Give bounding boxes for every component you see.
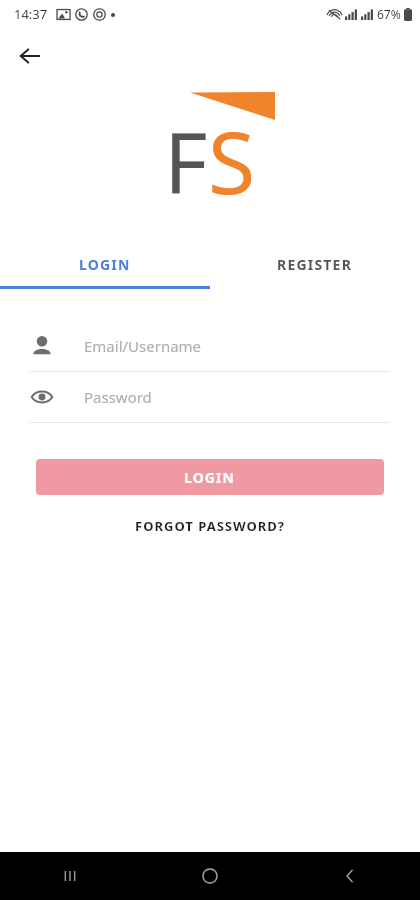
staticText: Email/Username <box>84 336 202 356</box>
button[interactable]: LOGIN <box>36 459 384 495</box>
button[interactable]: Password <box>0 372 420 422</box>
button[interactable]: Back <box>8 34 52 78</box>
staticText: LOGIN <box>184 468 236 487</box>
button[interactable]: Home <box>140 852 280 900</box>
staticText: S <box>208 102 256 206</box>
button[interactable]: Email/Username <box>0 321 420 371</box>
button[interactable]: Recents <box>0 852 140 900</box>
staticText: 14:37 <box>14 5 48 23</box>
staticText: Password <box>84 387 152 407</box>
staticText: FORGOT PASSWORD? <box>135 517 285 535</box>
button[interactable]: FORGOT PASSWORD? <box>123 513 297 539</box>
staticText: F <box>164 104 208 206</box>
button[interactable]: LOGIN <box>0 242 210 286</box>
staticText: REGISTER <box>277 255 353 274</box>
staticText: 67% <box>377 6 401 22</box>
button[interactable]: Back <box>280 852 420 900</box>
button[interactable]: REGISTER <box>210 242 420 286</box>
staticText: LOGIN <box>79 255 131 274</box>
